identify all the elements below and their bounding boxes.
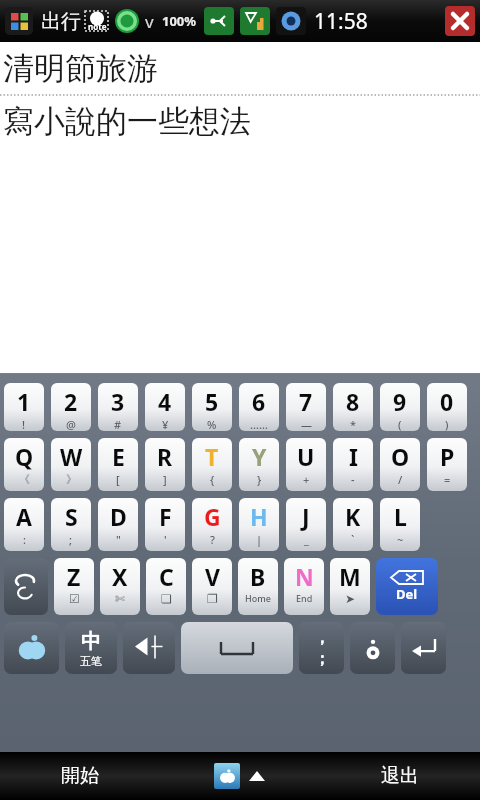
button[interactable]: Enter — [401, 622, 446, 674]
button[interactable]: C — [146, 558, 186, 615]
staticText: N — [295, 561, 314, 592]
staticText: Q — [15, 441, 34, 472]
button[interactable]: Cursor keys — [123, 622, 175, 674]
button[interactable]: Close — [445, 6, 475, 36]
staticText: ] — [163, 472, 167, 487]
button[interactable]: U — [286, 438, 326, 491]
button[interactable]: N — [284, 558, 324, 615]
button[interactable]: E — [98, 438, 138, 491]
staticText: 4 — [158, 386, 172, 417]
staticText: J — [302, 501, 310, 532]
button[interactable]: J — [286, 498, 326, 551]
button[interactable]: 3 — [98, 383, 138, 431]
button[interactable]: Period — [350, 622, 395, 674]
button[interactable]: Delete — [376, 558, 438, 615]
staticText: 0 — [440, 386, 454, 417]
staticText: 8 — [346, 386, 360, 417]
button[interactable]: I — [333, 438, 373, 491]
button[interactable]: H — [239, 498, 279, 551]
staticText: ; — [69, 532, 73, 547]
button[interactable]: 5 — [192, 383, 232, 431]
button[interactable]: 2 — [51, 383, 91, 431]
button[interactable]: Input method — [65, 622, 117, 674]
staticText: { — [210, 472, 215, 487]
button[interactable]: 7 — [286, 383, 326, 431]
button[interactable] — [160, 752, 320, 800]
staticText: B — [250, 561, 266, 592]
staticText: L — [394, 501, 407, 532]
button[interactable]: 清明節旅游 — [0, 42, 480, 374]
staticText: 5 — [205, 386, 219, 417]
staticText: : — [23, 532, 26, 547]
staticText: F — [159, 501, 172, 532]
staticText: ❐ — [207, 592, 218, 606]
staticText: ☑ — [69, 592, 80, 606]
staticText: v — [145, 10, 154, 33]
staticText: X — [112, 561, 128, 592]
button[interactable]: 8 — [333, 383, 373, 431]
button[interactable]: 1 — [4, 383, 44, 431]
button[interactable]: K — [333, 498, 373, 551]
staticText: 五笔 — [80, 654, 102, 668]
staticText: note — [88, 21, 107, 32]
staticText: E — [112, 441, 125, 472]
staticText: M — [339, 561, 361, 592]
button[interactable]: G — [192, 498, 232, 551]
staticText: [ — [116, 472, 120, 487]
button[interactable]: Space — [181, 622, 293, 674]
button[interactable]: B — [238, 558, 278, 615]
button[interactable]: X — [100, 558, 140, 615]
staticText: ➤ — [345, 592, 356, 606]
button[interactable]: Apple menu — [4, 622, 59, 674]
staticText: + — [303, 472, 310, 487]
staticText: ， — [314, 628, 330, 648]
staticText: 清明節旅游 — [3, 49, 158, 88]
button[interactable]: Z — [54, 558, 94, 615]
button[interactable]: 退出 — [320, 752, 480, 800]
button[interactable]: M — [330, 558, 370, 615]
button[interactable]: 6 — [239, 383, 279, 431]
staticText: 寫小說的一些想法 — [3, 102, 251, 141]
button[interactable]: D — [98, 498, 138, 551]
button[interactable]: V — [192, 558, 232, 615]
staticText: ✄ — [115, 592, 126, 606]
staticText: Home — [245, 592, 271, 604]
staticText: P — [440, 441, 455, 472]
staticText: U — [297, 441, 315, 472]
button[interactable]: O — [380, 438, 420, 491]
staticText: ! — [22, 417, 26, 431]
button[interactable]: 9 — [380, 383, 420, 431]
button[interactable]: Undo Redo — [4, 558, 48, 615]
staticText: ) — [445, 417, 449, 431]
staticText: Y — [252, 441, 267, 472]
staticText: " — [116, 532, 121, 547]
staticText: ~ — [397, 532, 404, 547]
button[interactable]: Semicolon — [299, 622, 344, 674]
button[interactable]: T — [192, 438, 232, 491]
button[interactable]: F — [145, 498, 185, 551]
button[interactable]: W — [51, 438, 91, 491]
button[interactable]: R — [145, 438, 185, 491]
button[interactable]: P — [427, 438, 467, 491]
button[interactable]: 開始 — [0, 752, 160, 800]
staticText: R — [157, 441, 173, 472]
button[interactable]: 4 — [145, 383, 185, 431]
staticText: % — [207, 417, 217, 431]
button[interactable]: Y — [239, 438, 279, 491]
staticText: O — [391, 441, 410, 472]
staticText: V — [205, 561, 220, 592]
button[interactable]: 0 — [427, 383, 467, 431]
button[interactable]: L — [380, 498, 420, 551]
staticText: S — [65, 501, 78, 532]
button[interactable]: A — [4, 498, 44, 551]
staticText: 1 — [17, 386, 31, 417]
staticText: A — [16, 501, 32, 532]
button[interactable]: Q — [4, 438, 44, 491]
staticText: ( — [398, 417, 402, 431]
staticText: 》 — [66, 472, 77, 486]
staticText: 9 — [393, 386, 407, 417]
button[interactable]: S — [51, 498, 91, 551]
button[interactable]: Start — [5, 7, 33, 35]
staticText: End — [296, 592, 313, 604]
staticText: ? — [210, 532, 215, 547]
